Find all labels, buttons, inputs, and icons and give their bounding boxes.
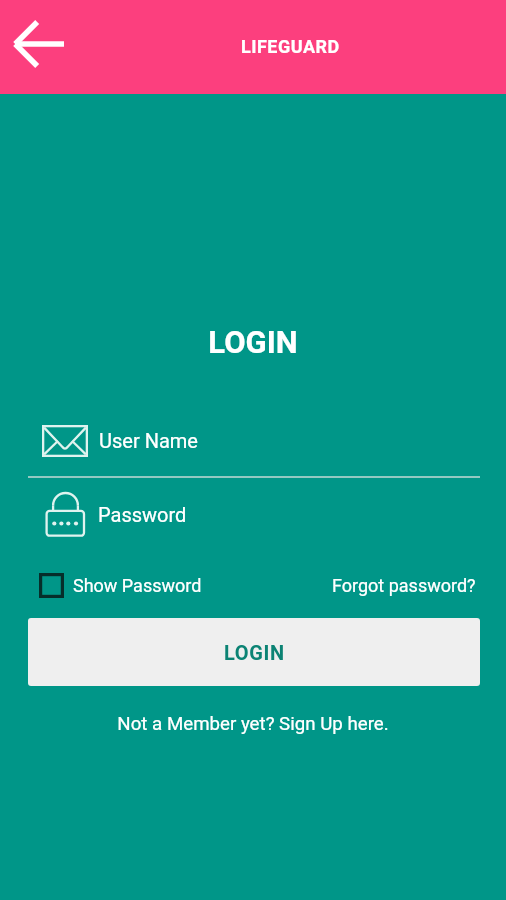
button[interactable]: LOGIN [28, 618, 480, 686]
staticText: Password [98, 503, 187, 526]
staticText: Show Password [73, 575, 202, 596]
button[interactable]: Back [0, 13, 70, 81]
staticText: Forgot password? [332, 575, 476, 596]
staticText: LOGIN [224, 641, 285, 664]
button[interactable]: User Name [28, 418, 480, 463]
button[interactable]: Show Password [33, 570, 202, 600]
staticText: LOGIN [0, 324, 506, 360]
button[interactable]: Password [28, 491, 480, 537]
button[interactable]: Not a Member yet? Sign Up here. [0, 713, 506, 735]
staticText: User Name [99, 429, 198, 452]
staticText: LIFEGUARD [241, 36, 340, 57]
button[interactable]: Forgot password? [332, 570, 476, 600]
